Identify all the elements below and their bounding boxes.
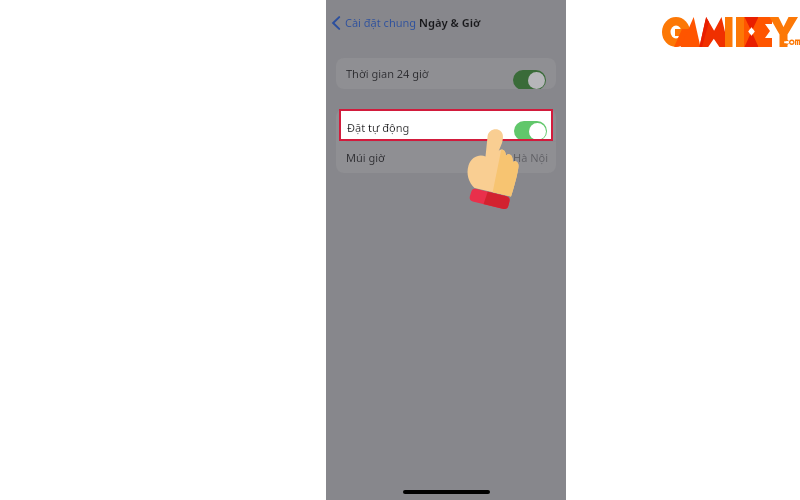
button[interactable]: Toggle switch [513,70,546,89]
other: Gamikey.com logo [662,15,799,49]
button[interactable]: Thời gian 24 giờ [336,58,556,89]
staticText: Cài đặt chung [345,15,417,30]
staticText: Ngày & Giờ [419,15,481,30]
staticText: Thời gian 24 giờ [346,66,429,81]
staticText: Đặt tự động [347,120,410,135]
staticText: Hà Nội [513,150,549,165]
button[interactable]: Múi giờ [336,142,556,173]
button[interactable]: Cài đặt chung [330,15,419,30]
staticText: Múi giờ [346,150,385,165]
button[interactable]: Đặt tự động [339,109,553,141]
button[interactable]: Toggle switch [514,121,547,141]
